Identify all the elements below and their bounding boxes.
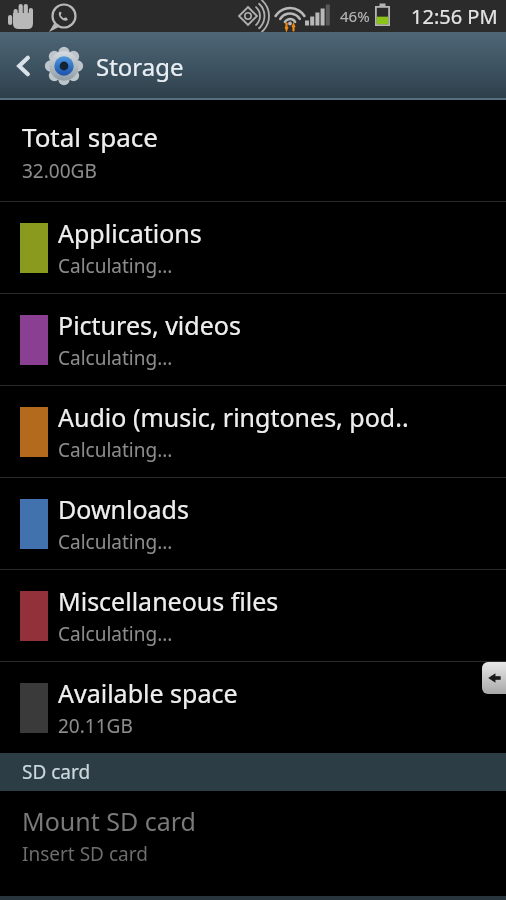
staticText: Calculating... [58, 529, 173, 555]
staticText: Insert SD card [22, 841, 148, 867]
staticText: 20.11GB [58, 713, 133, 739]
staticText: Applications [58, 216, 202, 250]
staticText: Calculating... [58, 621, 173, 647]
staticText: Calculating... [58, 253, 173, 279]
button[interactable]: Audio (music, ringtones, pod.. [0, 386, 506, 477]
staticText: Downloads [58, 492, 189, 526]
button[interactable]: Mount SD card [0, 791, 506, 879]
button[interactable]: Applications [0, 202, 506, 293]
staticText: Miscellaneous files [58, 584, 279, 618]
button[interactable]: Pictures, videos [0, 294, 506, 385]
staticText: Calculating... [58, 437, 173, 463]
button[interactable]: Available space [0, 662, 506, 753]
staticText: Calculating... [58, 345, 173, 371]
button[interactable]: Miscellaneous files [0, 570, 506, 661]
staticText: Total space [22, 119, 158, 154]
staticText: SD card [22, 759, 91, 785]
button[interactable]: Navigate up [0, 46, 506, 86]
button[interactable]: Downloads [0, 478, 506, 569]
button[interactable]: Open panel [482, 662, 506, 694]
staticText: Mount SD card [22, 804, 196, 838]
staticText: Available space [58, 676, 238, 710]
staticText: Audio (music, ringtones, pod.. [58, 400, 409, 434]
staticText: 46% [340, 6, 370, 26]
button[interactable]: Total space [0, 101, 506, 201]
staticText: 32.00GB [22, 158, 97, 184]
staticText: Storage [96, 50, 184, 83]
staticText: 12:56 PM [411, 3, 498, 30]
staticText: Pictures, videos [58, 308, 241, 342]
